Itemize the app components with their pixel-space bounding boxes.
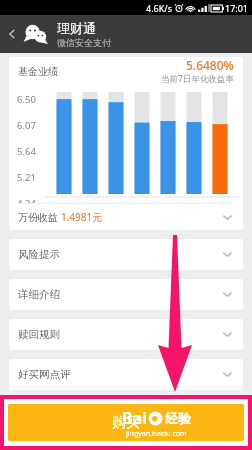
staticText: 详细介绍 bbox=[18, 288, 60, 301]
staticText: 4.6K/s bbox=[146, 2, 172, 14]
staticText: 17:01 bbox=[225, 2, 249, 14]
staticText: jingyan.baidu.com bbox=[126, 429, 187, 439]
staticText: 6.50 bbox=[17, 93, 36, 106]
button[interactable]: 风险提示 bbox=[9, 239, 243, 270]
staticText: Bai bbox=[122, 407, 148, 429]
staticText: 经验 bbox=[165, 410, 191, 426]
staticText: 1.4981元 bbox=[61, 210, 103, 224]
button[interactable]: 好买网点评 bbox=[9, 359, 243, 390]
staticText: 6.07 bbox=[17, 119, 36, 132]
staticText: 万份收益 bbox=[18, 210, 61, 224]
staticText: 风险提示 bbox=[18, 248, 60, 261]
staticText: 赎回规则 bbox=[18, 328, 60, 341]
staticText: 基金业绩 bbox=[18, 65, 58, 78]
button[interactable]: Back bbox=[0, 15, 24, 53]
staticText: 微信安全支付 bbox=[57, 37, 111, 48]
button[interactable]: 购买 bbox=[8, 404, 244, 441]
button[interactable]: 赎回规则 bbox=[9, 319, 243, 350]
staticText: 好买网点评 bbox=[18, 368, 71, 381]
staticText: 当前7日年化收益率 bbox=[161, 73, 234, 85]
button[interactable]: 万份收益 bbox=[9, 204, 243, 230]
staticText: 5.21 bbox=[17, 171, 36, 184]
staticText: 4.34 bbox=[17, 197, 36, 203]
staticText: 购买 bbox=[112, 414, 140, 432]
staticText: 5.64 bbox=[17, 145, 36, 158]
staticText: 理财通 bbox=[57, 20, 96, 36]
staticText: 5.6480% bbox=[186, 57, 234, 73]
button[interactable]: 详细介绍 bbox=[9, 279, 243, 310]
